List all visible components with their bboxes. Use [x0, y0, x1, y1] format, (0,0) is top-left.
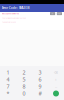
button[interactable]: 4	[0, 76, 16, 83]
staticText: #	[38, 90, 41, 97]
staticText: 5	[22, 76, 25, 83]
staticText: The recipient could not be reached	[2, 17, 26, 19]
staticText: …	[55, 85, 57, 88]
button[interactable]: 0	[16, 90, 32, 97]
button[interactable]: 2	[16, 69, 32, 76]
staticText: Tap Retry to resend	[2, 21, 16, 23]
staticText: 9	[38, 83, 41, 90]
staticText: 4	[6, 76, 9, 83]
button[interactable]: *	[0, 90, 16, 97]
button[interactable]: 3	[32, 69, 48, 76]
staticText: 7	[6, 83, 9, 90]
staticText: 3	[38, 69, 41, 76]
staticText: 1	[6, 69, 9, 76]
staticText: Error Code: SMS-038	[2, 6, 30, 10]
button[interactable]: 1	[0, 69, 16, 76]
staticText: Message not delivered	[2, 13, 19, 14]
button[interactable]: 7	[0, 83, 16, 90]
staticText: 2	[22, 69, 25, 76]
staticText: 0	[22, 90, 25, 97]
staticText: ⌫	[54, 71, 58, 74]
button[interactable]: ⌫	[48, 69, 64, 76]
button[interactable]: 9	[32, 83, 48, 90]
button[interactable]: 8	[16, 83, 32, 90]
staticText: 6	[38, 76, 41, 83]
staticText: Retry	[57, 13, 61, 14]
staticText: OK	[52, 13, 54, 14]
button[interactable]: 6	[32, 76, 48, 83]
button[interactable]: OK	[50, 12, 55, 15]
button[interactable]: Retry	[57, 12, 62, 15]
button[interactable]: 5	[16, 76, 32, 83]
button[interactable]: #	[32, 90, 48, 97]
staticText: 8	[22, 83, 25, 90]
staticText: *	[6, 90, 9, 97]
staticText: +	[55, 78, 57, 81]
button[interactable]: Call	[48, 90, 64, 97]
